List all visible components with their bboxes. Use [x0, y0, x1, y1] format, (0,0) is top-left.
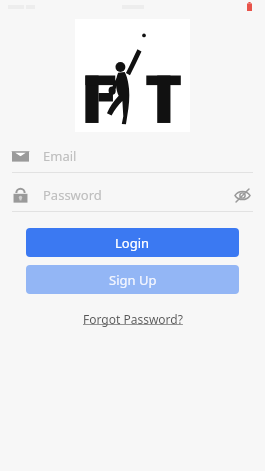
button[interactable]: Sign Up — [26, 265, 239, 294]
button[interactable]: Forgot Password? — [77, 308, 189, 330]
other: Password — [12, 187, 29, 204]
button[interactable]: Login — [26, 228, 239, 257]
staticText: Email — [43, 147, 77, 165]
button[interactable]: Email — [0, 140, 265, 173]
button[interactable]: Password — [0, 179, 265, 212]
staticText: Sign Up — [109, 271, 157, 289]
other: Email — [12, 148, 29, 165]
button[interactable]: Show password — [231, 184, 253, 206]
staticText: Forgot Password? — [83, 311, 183, 327]
staticText: Password — [43, 186, 102, 204]
staticText: Login — [115, 234, 150, 252]
